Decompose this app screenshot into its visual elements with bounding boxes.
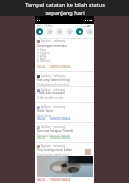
staticText: Tempel catatan ke bilah status sepanjang… xyxy=(25,1,105,16)
button[interactable]: Quick setting xyxy=(76,28,83,35)
button[interactable]: BALAS xyxy=(37,178,46,182)
button[interactable]: Aplikasi xyxy=(35,142,94,182)
staticText: BALAS xyxy=(37,65,46,69)
staticText: TANDAI DIBACA xyxy=(50,65,71,69)
staticText: Rasa xyxy=(40,48,46,52)
staticText: · sekarang · xyxy=(52,74,67,78)
button[interactable]: Aplikasi xyxy=(35,86,94,102)
button[interactable]: BALAS xyxy=(37,136,46,140)
button[interactable]: BALAS xyxy=(37,117,46,121)
button[interactable]: Quick setting xyxy=(36,28,43,35)
staticText: Domisili xyxy=(40,59,51,63)
button[interactable]: TANDAI DIBACA xyxy=(50,136,71,140)
button[interactable]: TANDAI DIBACA xyxy=(50,65,71,69)
staticText: · sekarang · xyxy=(52,88,67,92)
button[interactable]: Quick setting xyxy=(86,28,93,35)
staticText: Cinema xyxy=(40,51,50,55)
staticText: Aplikasi xyxy=(41,39,51,43)
staticText: Aplikasi xyxy=(41,125,51,129)
button[interactable]: Quick setting xyxy=(56,28,63,35)
button[interactable]: Aplikasi xyxy=(35,72,94,86)
staticText: Hallo Tante xyxy=(37,109,54,113)
staticText: Aplikasi xyxy=(41,74,51,78)
staticText: BALAS xyxy=(37,117,46,121)
staticText: BALAS xyxy=(37,178,46,182)
button[interactable]: TANDAI DIBACA xyxy=(50,178,71,182)
staticText: Rencana Sarapan Terbaik xyxy=(37,134,71,138)
staticText: Tambahan terinci hemat xyxy=(37,83,70,87)
button[interactable]: TANDAI DIBACA xyxy=(50,117,71,121)
button[interactable]: Aplikasi xyxy=(35,123,94,141)
staticText: TANDAI DIBACA xyxy=(50,136,71,140)
staticText: · sekarang · xyxy=(52,105,67,109)
staticText: TANDAI DIBACA xyxy=(50,178,71,182)
staticText: Sen, 13 Mei xyxy=(37,24,53,28)
staticText: Aplikasi xyxy=(41,88,51,92)
staticText: BALAS xyxy=(37,136,46,140)
button[interactable]: Aplikasi xyxy=(35,38,94,71)
button[interactable]: Aplikasi xyxy=(35,103,94,121)
staticText: Tidak ada transaksi xyxy=(37,91,65,95)
staticText: AlpIT xyxy=(40,57,47,61)
staticText: Rencana Sarapan Terbaik xyxy=(37,129,74,133)
staticText: · sekarang · xyxy=(52,39,67,43)
button[interactable]: BALAS xyxy=(37,65,46,69)
staticText: Aplikasi xyxy=(41,105,51,109)
staticText: Foto kucing untuk kalian xyxy=(37,148,73,152)
staticText: ARGE xyxy=(40,54,47,58)
staticText: Rancang Sistem Energi xyxy=(37,78,70,82)
staticText: · sekarang · xyxy=(52,144,67,148)
staticText: Lihat Tante xyxy=(37,114,52,118)
staticText: · sekarang · xyxy=(52,125,67,129)
button[interactable]: Quick setting xyxy=(46,28,53,35)
staticText: Tidak mudah cerdas xyxy=(37,96,64,100)
staticText: TANDAI DIBACA xyxy=(50,117,71,121)
staticText: Lihat kucing cantik jelita xyxy=(37,153,69,157)
staticText: Aplikasi xyxy=(41,144,51,148)
button[interactable]: Quick setting xyxy=(66,28,73,35)
staticText: Undangan reservasi xyxy=(37,44,67,48)
